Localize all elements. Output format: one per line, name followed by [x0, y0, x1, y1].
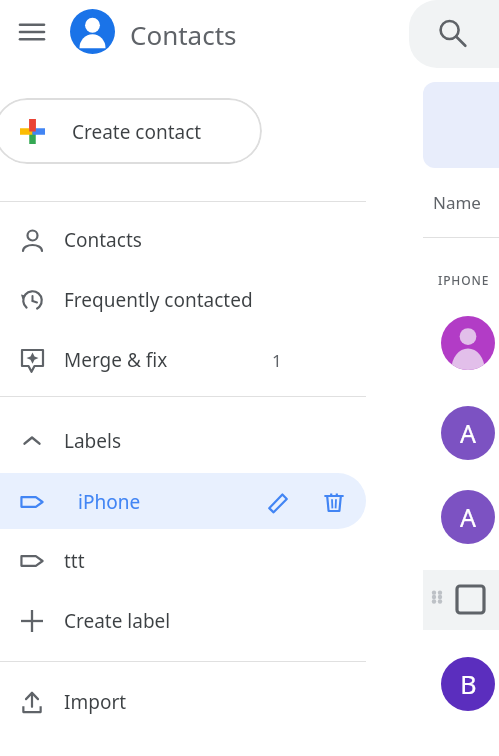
- button[interactable]: Edit label: [262, 486, 294, 518]
- button[interactable]: Contacts: [0, 215, 366, 265]
- staticText: Contacts: [130, 17, 237, 52]
- staticText: iPhone: [78, 489, 141, 515]
- staticText: Contacts: [64, 227, 142, 253]
- staticText: Create label: [64, 608, 171, 634]
- button[interactable]: Main menu: [10, 10, 54, 54]
- staticText: Labels: [64, 428, 122, 454]
- button[interactable]: Labels: [0, 416, 366, 466]
- staticText: Import: [64, 689, 127, 715]
- button[interactable]: A: [441, 406, 495, 460]
- button[interactable]: iPhone: [0, 473, 366, 529]
- staticText: A: [460, 416, 476, 450]
- button[interactable]: A: [441, 490, 495, 544]
- staticText: A: [460, 500, 476, 534]
- button[interactable]: Search: [409, 0, 499, 68]
- button[interactable]: Merge & fix: [0, 335, 366, 385]
- button[interactable]: Create label: [0, 595, 366, 647]
- staticText: IPHONE: [438, 272, 490, 288]
- button[interactable]: Select contact: [423, 570, 499, 630]
- button[interactable]: Create contact: [0, 98, 262, 164]
- button[interactable]: Import: [0, 676, 366, 728]
- staticText: Merge & fix: [64, 347, 168, 373]
- button[interactable]: ttt: [0, 535, 366, 587]
- staticText: Name: [433, 191, 481, 214]
- button[interactable]: Delete label: [318, 486, 350, 518]
- staticText: 1: [272, 349, 282, 372]
- staticText: Frequently contacted: [64, 287, 253, 313]
- staticText: B: [460, 667, 477, 701]
- staticText: ttt: [64, 548, 85, 574]
- staticText: Create contact: [72, 119, 202, 145]
- button[interactable]: Contact avatar: [441, 316, 495, 370]
- button[interactable]: Frequently contacted: [0, 275, 366, 325]
- button[interactable]: B: [441, 657, 495, 711]
